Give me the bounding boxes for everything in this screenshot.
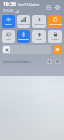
staticText: Mobile data [17, 23, 30, 26]
button[interactable]: Auto-rotate [48, 15, 62, 28]
button[interactable]: Cast [2, 30, 15, 43]
button[interactable]: Edit quick settings [44, 3, 52, 11]
button[interactable]: Do not disturb [46, 58, 53, 65]
staticText: MTN NG [3, 9, 14, 13]
staticText: Screen [51, 38, 59, 41]
button[interactable]: Mobile data [17, 15, 30, 28]
button[interactable]: Brightness [2, 45, 51, 54]
staticText: Flashlight [34, 23, 45, 26]
button[interactable]: Notification settings [54, 58, 61, 65]
button[interactable]: Brightness settings [53, 45, 62, 54]
button[interactable]: Flashlight [32, 15, 46, 28]
button[interactable]: Silent [32, 30, 46, 43]
staticText: Bluetooth [18, 38, 29, 41]
button[interactable]: Screen [48, 30, 62, 43]
staticText: Cast [6, 38, 11, 41]
button[interactable]: Settings [53, 3, 61, 11]
button[interactable]: Bluetooth [17, 30, 30, 43]
staticText: Silent [36, 38, 42, 41]
staticText: Auto-rotate [49, 23, 62, 26]
staticText: Sun 9 October [18, 3, 40, 7]
button[interactable]: WLAN [2, 15, 15, 28]
staticText: 10:38 [3, 1, 16, 8]
staticText: WLAN [5, 23, 12, 26]
staticText: Screen notifications [3, 60, 31, 64]
